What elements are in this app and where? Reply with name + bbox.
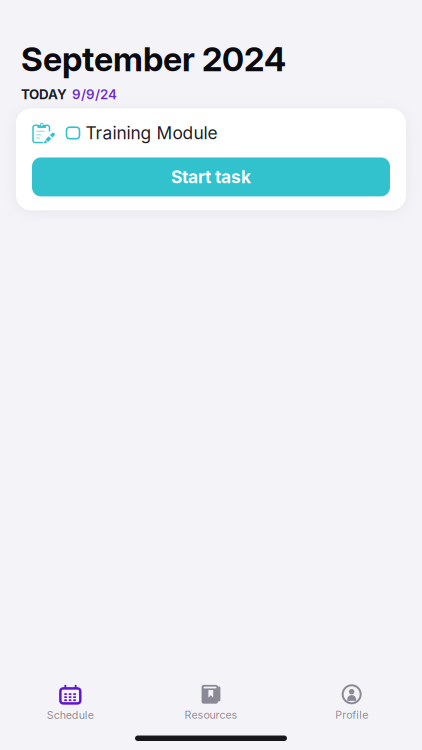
button[interactable]: Resources xyxy=(141,684,281,721)
staticText: Schedule xyxy=(47,709,94,721)
staticText: 9/9/24 xyxy=(72,86,117,102)
staticText: Start task xyxy=(171,166,251,187)
staticText: Training Module xyxy=(85,122,217,143)
button[interactable]: Profile xyxy=(281,684,422,721)
staticText: September 2024 xyxy=(21,39,286,79)
button[interactable]: Schedule xyxy=(0,684,141,721)
staticText: Profile xyxy=(335,708,368,721)
staticText: TODAY xyxy=(21,86,67,102)
button[interactable]: Start task xyxy=(32,157,390,196)
staticText: Resources xyxy=(184,708,237,721)
